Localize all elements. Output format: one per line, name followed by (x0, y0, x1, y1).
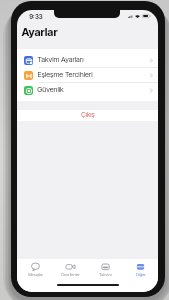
staticText: Çıkış (81, 111, 95, 119)
button[interactable]: Takvim Ayarları (17, 53, 158, 67)
button[interactable]: Diğer (123, 259, 158, 280)
staticText: Takvim Ayarları (37, 55, 84, 64)
button[interactable]: Önerilenler (53, 259, 88, 280)
staticText: 9:33 (29, 13, 43, 21)
button[interactable]: Güvenlik (17, 83, 158, 97)
staticText: Mesajlar (28, 272, 43, 277)
button[interactable]: Mesajlar (17, 259, 53, 280)
staticText: Diğer (136, 272, 146, 277)
staticText: Takvim (99, 272, 112, 277)
button[interactable]: Eşleşme Tercihleri (17, 68, 158, 82)
staticText: Ayarlar (21, 25, 58, 38)
staticText: Önerilenler (61, 272, 80, 277)
button[interactable]: Takvim (88, 259, 123, 280)
staticText: Eşleşme Tercihleri (37, 70, 93, 79)
button[interactable]: Çıkış (17, 110, 158, 121)
staticText: Güvenlik (37, 85, 64, 94)
